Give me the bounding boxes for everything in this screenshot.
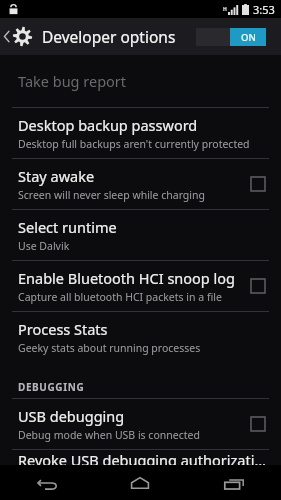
- button[interactable]: Select runtime: [0, 210, 281, 260]
- button[interactable]: Enable Bluetooth HCI snoop log checkbox: [245, 273, 271, 299]
- staticText: USB debugging: [18, 406, 125, 426]
- button[interactable]: Developer options on: [196, 28, 266, 46]
- button[interactable]: Recent apps: [187, 465, 281, 500]
- staticText: Take bug report: [18, 71, 127, 91]
- button[interactable]: Home: [93, 465, 187, 500]
- staticText: DEBUGGING: [18, 380, 85, 394]
- button[interactable]: Process Stats: [0, 312, 281, 362]
- button[interactable]: Stay awake checkbox: [245, 171, 271, 197]
- staticText: 3:53: [253, 2, 275, 17]
- staticText: ON: [241, 31, 256, 44]
- staticText: Capture all bluetooth HCI packets in a f…: [18, 290, 222, 304]
- staticText: Screen will never sleep while charging: [18, 188, 205, 202]
- button[interactable]: Developer options: [0, 18, 176, 55]
- staticText: Enable Bluetooth HCI snoop log: [18, 268, 235, 288]
- button[interactable]: Stay awake: [0, 159, 281, 209]
- staticText: Select runtime: [18, 217, 117, 237]
- staticText: Process Stats: [18, 319, 108, 339]
- button[interactable]: Enable Bluetooth HCI snoop log: [0, 261, 281, 311]
- staticText: Debug mode when USB is connected: [18, 428, 200, 442]
- staticText: Desktop full backups aren't currently pr…: [18, 137, 250, 151]
- staticText: Use Dalvik: [18, 239, 70, 253]
- button[interactable]: USB debugging checkbox: [245, 411, 271, 437]
- button[interactable]: USB debugging: [0, 399, 281, 449]
- button[interactable]: Desktop backup password: [0, 108, 281, 158]
- staticText: Geeky stats about running processes: [18, 341, 201, 355]
- button[interactable]: Back: [0, 465, 93, 500]
- staticText: H: [223, 6, 227, 13]
- staticText: Revoke USB debugging authorizations: [18, 450, 271, 465]
- staticText: Desktop backup password: [18, 115, 198, 135]
- button[interactable]: Revoke USB debugging authorizations: [0, 450, 281, 465]
- staticText: Developer options: [42, 26, 176, 47]
- staticText: Stay awake: [18, 166, 95, 186]
- button[interactable]: Take bug report: [0, 55, 281, 107]
